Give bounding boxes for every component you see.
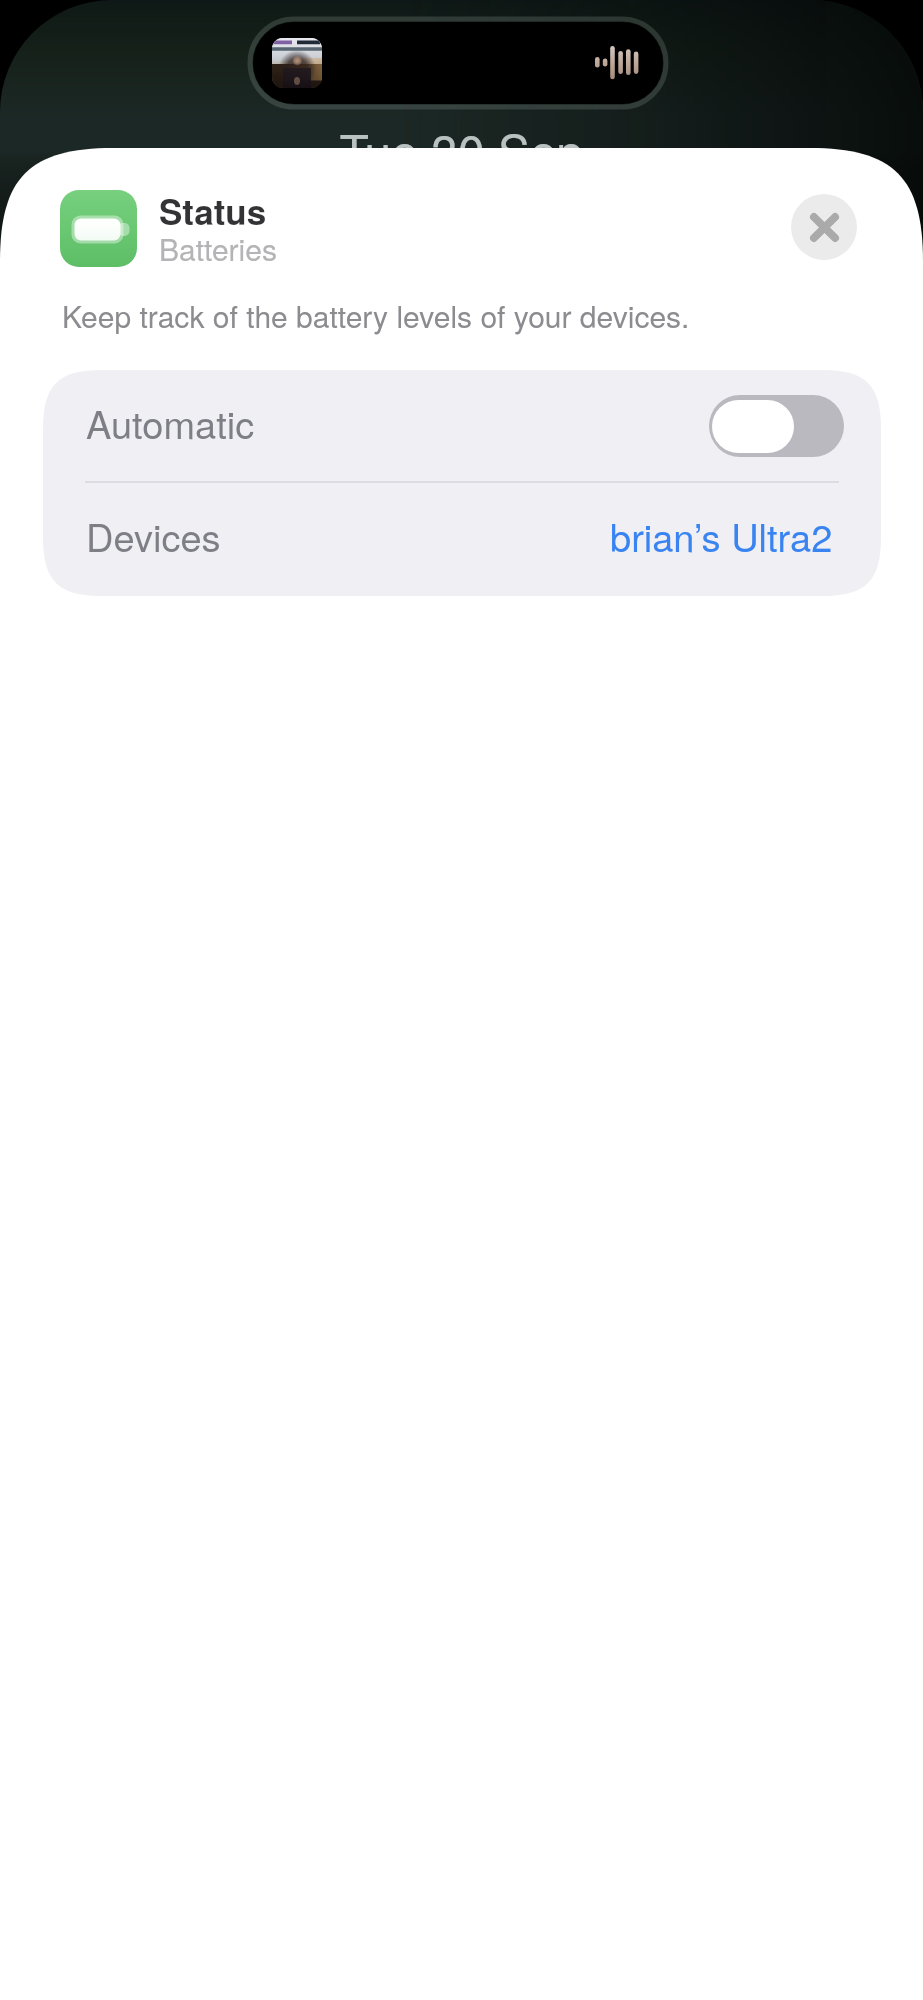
button[interactable]: Automatic [43, 370, 881, 481]
staticText: Devices [86, 508, 221, 562]
button[interactable]: Close [791, 194, 857, 260]
staticText: Tue 30 Sep [0, 115, 923, 184]
staticText: Keep track of the battery levels of your… [62, 294, 690, 337]
staticText: brian’s Ultra2 [610, 508, 833, 562]
button[interactable]: Automatic toggle [709, 395, 844, 457]
button[interactable]: Devices [43, 483, 881, 596]
staticText: Batteries [159, 227, 277, 270]
staticText: Automatic [86, 395, 255, 449]
staticText: Status [159, 186, 267, 236]
